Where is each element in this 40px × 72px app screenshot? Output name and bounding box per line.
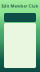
staticText: Edit Member Club: [1, 3, 38, 9]
